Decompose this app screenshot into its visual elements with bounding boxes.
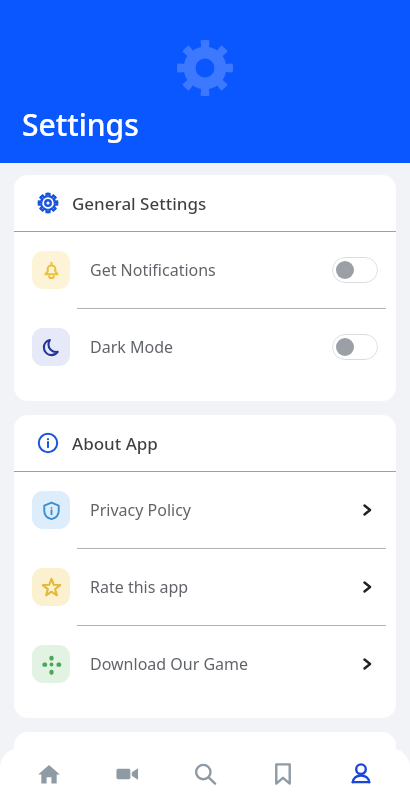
staticText: Privacy Policy — [90, 499, 191, 521]
button[interactable]: Search — [176, 748, 234, 800]
staticText: Rate this app — [90, 576, 189, 598]
button[interactable]: Privacy Policy — [14, 472, 396, 548]
button[interactable]: Rate this app — [14, 549, 396, 625]
staticText: Dark Mode — [90, 336, 174, 358]
button[interactable]: Home — [20, 748, 78, 800]
button[interactable]: Profile — [332, 748, 390, 800]
button[interactable]: Dark Mode — [14, 309, 396, 385]
other: Settings — [177, 40, 233, 96]
staticText: Settings — [22, 104, 139, 145]
button[interactable]: Videos — [98, 748, 156, 800]
button[interactable]: Download Our Game — [14, 626, 396, 702]
button[interactable]: Bookmarks — [254, 748, 312, 800]
button[interactable]: Get Notifications — [14, 232, 396, 308]
button[interactable]: General Settings — [14, 175, 396, 231]
staticText: Download Our Game — [90, 653, 249, 675]
button[interactable]: About App — [14, 415, 396, 471]
staticText: About App — [72, 432, 158, 455]
staticText: General Settings — [72, 192, 207, 215]
staticText: Get Notifications — [90, 259, 216, 281]
